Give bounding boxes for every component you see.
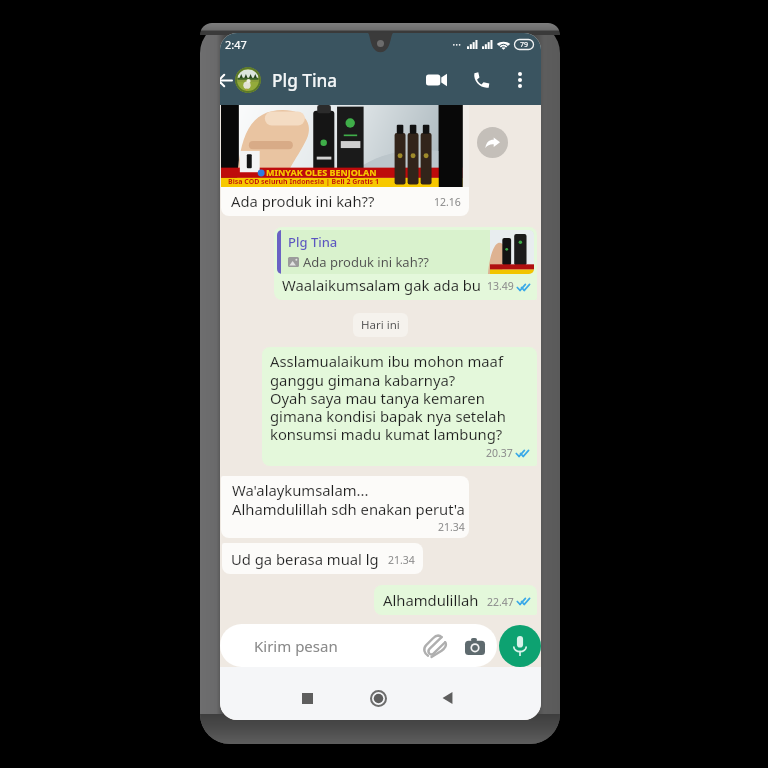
- button[interactable]: Home: [355, 675, 401, 720]
- button[interactable]: Alhamdulillah: [374, 585, 537, 615]
- staticText: 79: [520, 40, 529, 50]
- button[interactable]: Voice call: [465, 64, 497, 96]
- staticText: Waalaikumsalam gak ada bu: [282, 275, 482, 295]
- button[interactable]: More options: [507, 67, 533, 93]
- button[interactable]: Kirim pesan: [220, 624, 497, 667]
- staticText: 21.34: [388, 553, 415, 567]
- staticText: Wa'alaykumsalam... Alhamdulillah sdh ena…: [232, 480, 465, 519]
- staticText: 20.37: [486, 446, 513, 460]
- staticText: Alhamdulillah: [383, 590, 479, 610]
- staticText: 22.47: [487, 595, 514, 609]
- button[interactable]: Back: [220, 69, 235, 91]
- button[interactable]: Voice message: [499, 625, 541, 667]
- staticText: Ud ga berasa mual lg: [231, 549, 379, 569]
- button[interactable]: Forward: [477, 127, 508, 158]
- button[interactable]: Hari ini: [353, 313, 408, 337]
- staticText: Plg Tina: [272, 69, 338, 92]
- staticText: 21.34: [438, 520, 465, 534]
- staticText: Bisa COD seluruh Indonesia | Beli 2 Grat…: [228, 177, 379, 187]
- staticText: 2:47: [225, 37, 247, 52]
- button[interactable]: Wa'alaykumsalam... Alhamdulillah sdh ena…: [221, 476, 469, 538]
- button[interactable]: Attach: [423, 634, 447, 658]
- button[interactable]: Back: [424, 675, 470, 720]
- button[interactable]: Profile photo: [235, 67, 261, 93]
- button[interactable]: Camera: [463, 634, 487, 658]
- staticText: 12.16: [434, 195, 461, 209]
- button[interactable]: Recents: [284, 675, 330, 720]
- button[interactable]: Video call: [418, 62, 454, 98]
- staticText: Ada produk ini kah??: [303, 253, 429, 271]
- button[interactable]: Plg Tina: [274, 227, 537, 300]
- staticText: 13.49: [487, 279, 514, 293]
- button[interactable]: Ud ga berasa mual lg: [222, 543, 423, 574]
- button[interactable]: Asslamualaikum ibu mohon maaf ganggu gim…: [262, 347, 537, 466]
- staticText: Plg Tina: [288, 233, 338, 251]
- button[interactable]: MINYAK OLES BENJOLAN: [221, 105, 469, 216]
- staticText: Asslamualaikum ibu mohon maaf ganggu gim…: [270, 351, 506, 444]
- staticText: Ada produk ini kah??: [231, 191, 375, 211]
- staticText: Hari ini: [361, 317, 400, 333]
- staticText: Kirim pesan: [254, 636, 338, 656]
- staticText: MINYAK OLES BENJOLAN: [266, 166, 377, 178]
